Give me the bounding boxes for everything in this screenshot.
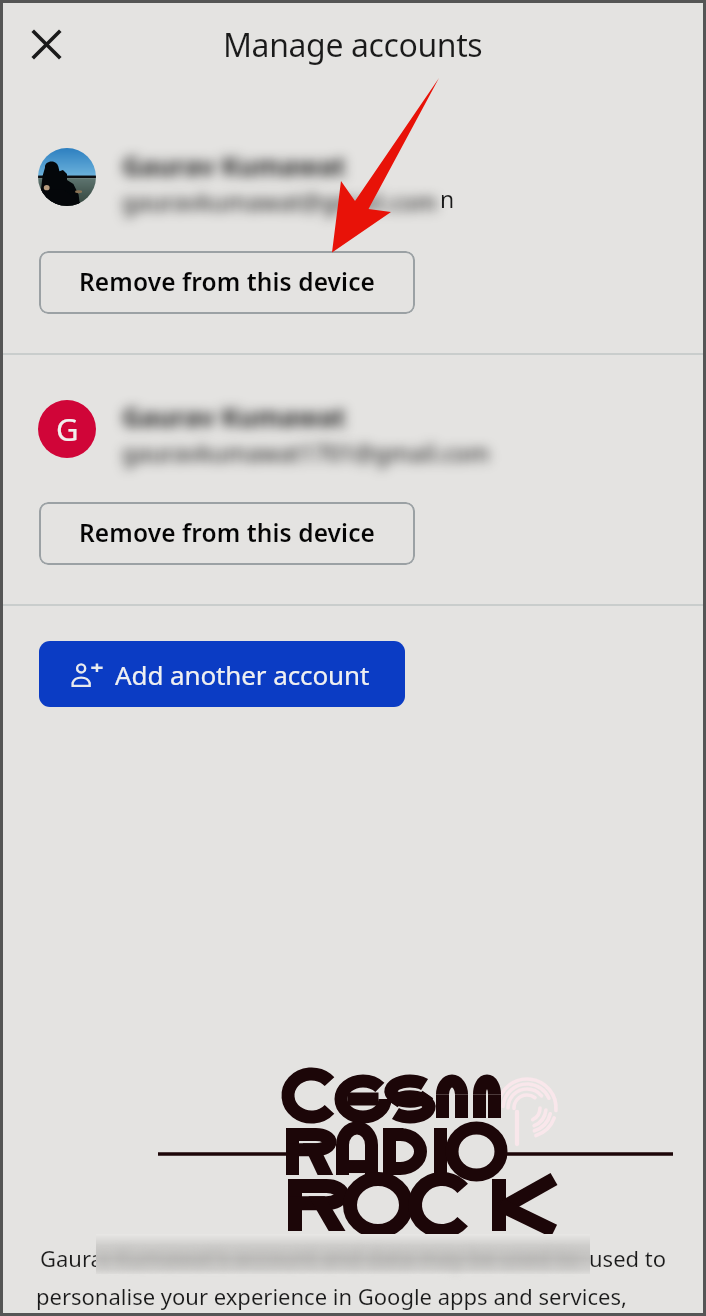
staticText: Gaurav Kumawat: [122, 399, 346, 434]
button[interactable]: Remove from this device: [39, 502, 415, 565]
staticText: Gaura: [40, 1243, 103, 1273]
staticText: Manage accounts: [223, 23, 483, 67]
staticText: G: [56, 408, 79, 450]
staticText: personalise your experience in Google ap…: [36, 1281, 627, 1311]
button[interactable]: Add another account: [39, 641, 405, 707]
staticText: Remove from this device: [79, 516, 375, 549]
staticText: n: [440, 183, 455, 214]
staticText: gauravkumawat@gmail.com: [122, 186, 437, 217]
staticText: Add another account: [115, 657, 370, 692]
staticText: gauravkumawat1701@gmail.com: [122, 437, 490, 468]
button[interactable]: Remove from this device: [39, 251, 415, 314]
staticText: v Kumawat's account and data may be used…: [99, 1242, 578, 1272]
staticText: used to: [589, 1243, 667, 1273]
button[interactable]: Close: [19, 17, 73, 71]
staticText: Gaurav Kumawat: [122, 148, 346, 183]
staticText: Remove from this device: [79, 265, 375, 298]
